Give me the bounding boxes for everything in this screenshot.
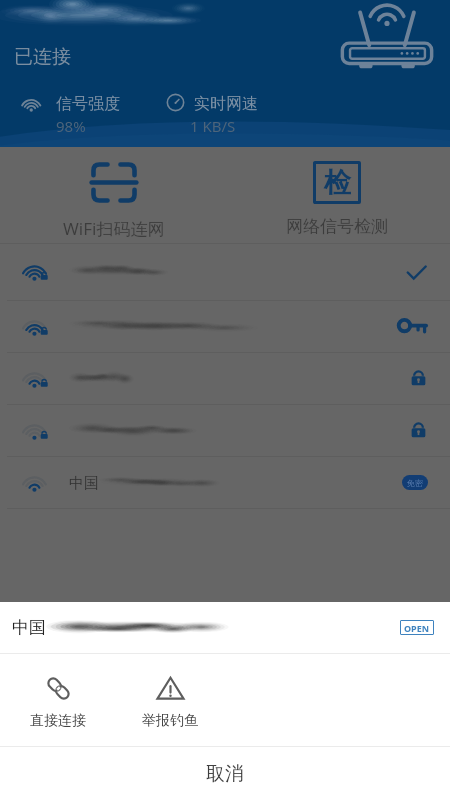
staticText: WiFi扫码连网 (63, 217, 165, 240)
staticText: 已连接 (14, 45, 71, 69)
staticText: 举报钓鱼 (142, 712, 198, 730)
other: Secured (409, 421, 428, 440)
staticText: 1 KB/S (190, 116, 236, 136)
staticText: OPEN (404, 622, 430, 634)
other: Router (339, 3, 435, 71)
other: Saved (397, 311, 428, 342)
staticText: 信号强度 (56, 94, 120, 114)
staticText: 取消 (206, 762, 244, 786)
staticText: 实时网速 (194, 94, 258, 114)
button[interactable]: WiFi扫码连网 (54, 155, 174, 245)
staticText: 中国 (69, 474, 99, 493)
button[interactable]: 举报钓鱼 (134, 666, 206, 734)
button[interactable]: Secured (0, 405, 450, 456)
button[interactable]: 中国 (0, 457, 450, 508)
other: Connected (405, 261, 428, 284)
button[interactable]: Secured (0, 353, 450, 404)
staticText: 直接连接 (30, 712, 86, 730)
button[interactable]: 取消 (0, 747, 450, 800)
staticText: 98% (56, 116, 86, 136)
button[interactable]: 直接连接 (22, 666, 94, 734)
button[interactable]: OPEN (400, 620, 434, 635)
button[interactable]: Saved (0, 301, 450, 352)
staticText: 免密 (407, 478, 423, 488)
staticText: 中国 (12, 617, 46, 638)
button[interactable]: Connected (0, 244, 450, 300)
other: Secured (409, 369, 428, 388)
staticText: 检 (324, 166, 351, 200)
staticText: 网络信号检测 (286, 216, 388, 237)
other: Free WiFi (402, 475, 428, 490)
button[interactable]: 检 (277, 155, 397, 242)
